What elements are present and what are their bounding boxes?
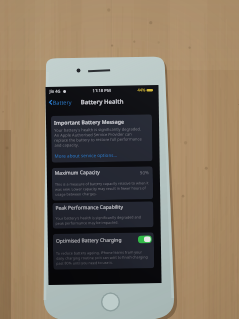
- staticText: Jio 4G: [49, 89, 61, 94]
- button[interactable]: Optimised Battery Charging: [56, 235, 152, 245]
- staticText: 11:18 PM: [92, 88, 112, 94]
- staticText: Maximum Capacity: [55, 169, 100, 177]
- staticText: 44%: [137, 87, 146, 92]
- staticText: Battery Health: [81, 98, 124, 106]
- staticText: 90%: [140, 169, 150, 175]
- staticText: Peak Performance Capability: [55, 204, 123, 212]
- staticText: Optimised Battery Charging: [56, 237, 122, 245]
- button[interactable]: More about service options...: [54, 152, 118, 159]
- staticText: Important Battery Message: [54, 118, 124, 126]
- staticText: Your battery's health is significantly d…: [54, 126, 142, 148]
- staticText: Your battery's health is significantly d…: [55, 214, 142, 226]
- staticText: To reduce battery ageing, iPhone learns …: [56, 249, 148, 266]
- staticText: Battery: [53, 98, 72, 106]
- button[interactable]: Peak Performance Capability: [55, 203, 150, 212]
- staticText: This is a measure of battery capacity re…: [55, 180, 149, 197]
- button[interactable]: Battery: [49, 98, 72, 106]
- button[interactable]: Maximum Capacity: [55, 168, 150, 177]
